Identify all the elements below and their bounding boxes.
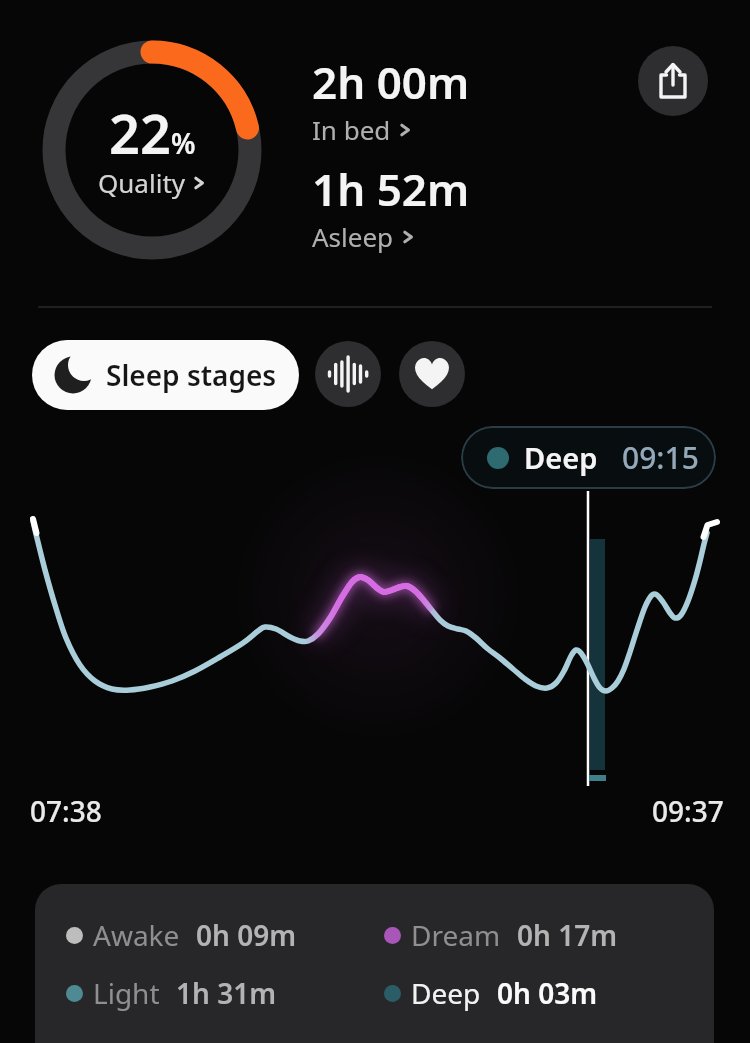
button[interactable]: In bed bbox=[312, 112, 413, 147]
staticText: In bed bbox=[312, 112, 391, 147]
button[interactable]: 22 bbox=[42, 40, 262, 260]
staticText: 0h 03m bbox=[497, 974, 598, 1012]
button[interactable] bbox=[399, 341, 465, 407]
staticText: 1h 52m bbox=[312, 159, 470, 219]
button[interactable] bbox=[315, 341, 381, 407]
staticText: Sleep stages bbox=[106, 356, 277, 394]
staticText: 22 bbox=[109, 96, 171, 170]
staticText: Light bbox=[93, 974, 160, 1012]
staticText: 2h 00m bbox=[312, 52, 470, 112]
staticText: % bbox=[171, 124, 196, 162]
button[interactable] bbox=[638, 46, 708, 116]
staticText: Dream bbox=[411, 916, 501, 954]
staticText: 0h 09m bbox=[196, 916, 297, 954]
staticText: Deep bbox=[524, 438, 598, 477]
staticText: Quality bbox=[98, 165, 186, 200]
staticText: 1h 31m bbox=[176, 974, 277, 1012]
staticText: 07:38 bbox=[30, 792, 102, 830]
staticText: Asleep bbox=[312, 219, 394, 254]
staticText: 0h 17m bbox=[517, 916, 618, 954]
staticText: Awake bbox=[93, 916, 180, 954]
staticText: Deep bbox=[411, 974, 481, 1012]
staticText: 09:15 bbox=[622, 437, 699, 478]
staticText: 09:37 bbox=[652, 792, 724, 830]
button[interactable]: Asleep bbox=[312, 219, 416, 254]
button[interactable]: Deep bbox=[461, 426, 716, 489]
button[interactable]: Sleep stages bbox=[32, 340, 299, 410]
